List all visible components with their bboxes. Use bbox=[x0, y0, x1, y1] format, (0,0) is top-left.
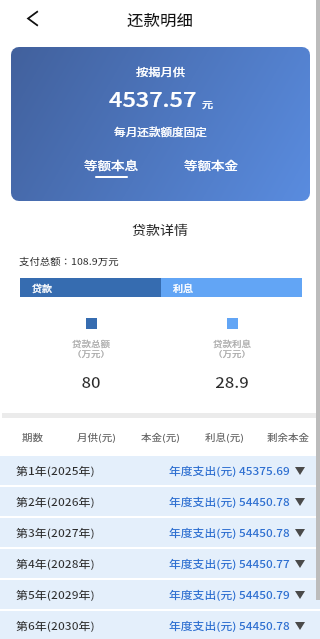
staticText: 等额本金 bbox=[184, 156, 238, 174]
button[interactable]: Back bbox=[16, 2, 48, 34]
button[interactable]: 第1年(2025年) bbox=[0, 456, 320, 485]
staticText: 4537.57 bbox=[109, 83, 197, 113]
staticText: 利息(元) bbox=[205, 431, 244, 444]
staticText: 等额本息 bbox=[84, 156, 138, 174]
staticText: （万元） bbox=[51, 348, 131, 360]
staticText: 年度支出(元) 54450.78 bbox=[169, 525, 290, 540]
staticText: 第4年(2028年) bbox=[16, 556, 95, 571]
staticText: 利息 bbox=[173, 282, 193, 294]
button[interactable]: 等额本金 bbox=[178, 155, 244, 187]
staticText: 80 bbox=[51, 372, 131, 392]
staticText: 年度支出(元) 54450.78 bbox=[169, 494, 290, 509]
staticText: 每月还款额度固定 bbox=[11, 125, 310, 140]
staticText: 第1年(2025年) bbox=[16, 463, 95, 478]
staticText: 贷款总额 bbox=[51, 338, 131, 350]
staticText: 剩余本金 bbox=[267, 431, 309, 444]
staticText: 按揭月供 bbox=[11, 64, 310, 80]
staticText: 第5年(2029年) bbox=[16, 587, 95, 602]
button[interactable]: 等额本息 bbox=[78, 155, 144, 187]
staticText: 第6年(2030年) bbox=[16, 618, 95, 633]
staticText: 期数 bbox=[22, 431, 43, 444]
staticText: 月供(元) bbox=[77, 431, 116, 444]
button[interactable]: 第2年(2026年) bbox=[0, 487, 320, 516]
button[interactable]: 第5年(2029年) bbox=[0, 580, 320, 609]
staticText: 贷款 bbox=[32, 282, 52, 294]
staticText: 第3年(2027年) bbox=[16, 525, 95, 540]
staticText: 年度支出(元) 45375.69 bbox=[169, 463, 290, 478]
staticText: 支付总额：108.9万元 bbox=[19, 255, 119, 268]
staticText: 本金(元) bbox=[141, 431, 180, 444]
button[interactable]: 第6年(2030年) bbox=[0, 611, 320, 639]
staticText: 第2年(2026年) bbox=[16, 494, 95, 509]
staticText: （万元） bbox=[192, 348, 272, 360]
staticText: 元 bbox=[202, 97, 213, 111]
staticText: 贷款详情 bbox=[0, 221, 320, 239]
staticText: 年度支出(元) 54450.77 bbox=[169, 556, 290, 571]
staticText: 还款明细 bbox=[0, 9, 320, 29]
staticText: 年度支出(元) 54450.79 bbox=[169, 587, 290, 602]
button[interactable]: 第4年(2028年) bbox=[0, 549, 320, 578]
staticText: 年度支出(元) 54450.78 bbox=[169, 618, 290, 633]
staticText: 贷款利息 bbox=[192, 338, 272, 350]
button[interactable]: 第3年(2027年) bbox=[0, 518, 320, 547]
staticText: 28.9 bbox=[192, 372, 272, 392]
